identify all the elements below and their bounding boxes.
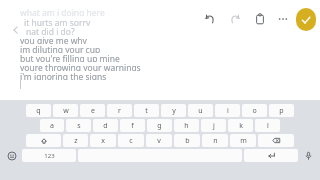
staticText: q <box>36 106 41 116</box>
button[interactable]: c <box>118 134 144 147</box>
button[interactable]: d <box>93 119 118 132</box>
staticText: p <box>279 106 284 116</box>
staticText: but you're filling up mine <box>20 53 120 62</box>
staticText: it hurts am sorry <box>24 17 91 26</box>
staticText: s <box>77 121 81 131</box>
button[interactable]: w <box>53 104 78 117</box>
staticText: 123 <box>44 152 55 160</box>
button[interactable]: Share <box>250 9 270 29</box>
button[interactable]: h <box>174 119 199 132</box>
button[interactable]: u <box>188 104 213 117</box>
staticText: x <box>101 136 105 146</box>
staticText: youre throwing your warnings <box>20 62 141 71</box>
staticText: w <box>63 106 69 116</box>
staticText: t <box>145 106 148 116</box>
button[interactable]: Redo <box>225 9 245 29</box>
button[interactable]: a <box>40 119 64 132</box>
button[interactable]: v <box>146 134 172 147</box>
button[interactable]: Voice input <box>300 149 316 162</box>
staticText: e <box>91 106 95 116</box>
staticText: l <box>267 121 269 131</box>
button[interactable]: Undo <box>200 9 220 29</box>
staticText: g <box>157 121 162 131</box>
staticText: v <box>157 136 161 146</box>
button[interactable]: y <box>161 104 186 117</box>
staticText: z <box>74 136 78 146</box>
button[interactable]: Emoji <box>4 149 20 162</box>
staticText: m <box>240 136 247 146</box>
button[interactable]: Shift <box>26 134 61 147</box>
button[interactable]: x <box>90 134 116 147</box>
button[interactable]: b <box>174 134 200 147</box>
button[interactable]: Enter <box>244 149 298 162</box>
button[interactable]: r <box>107 104 132 117</box>
button[interactable]: g <box>147 119 172 132</box>
button[interactable]: Numbers <box>22 149 76 162</box>
staticText: i <box>227 106 229 116</box>
button[interactable]: k <box>228 119 253 132</box>
staticText: o <box>252 106 257 116</box>
button[interactable]: n <box>202 134 228 147</box>
button[interactable]: o <box>242 104 267 117</box>
staticText: j <box>213 121 215 131</box>
button[interactable]: Backspace <box>258 134 294 147</box>
staticText: n <box>213 136 218 146</box>
staticText: a <box>50 121 54 131</box>
staticText: what am i doing here <box>20 7 105 16</box>
button[interactable]: Done <box>296 8 316 31</box>
staticText: nat did i do? <box>26 26 75 35</box>
staticText: r <box>118 106 121 116</box>
button[interactable]: e <box>80 104 105 117</box>
staticText: y <box>172 106 176 116</box>
staticText: you give me why <box>20 35 87 44</box>
button[interactable]: Back <box>9 23 23 37</box>
button[interactable]: p <box>269 104 294 117</box>
staticText: b <box>185 136 190 146</box>
button[interactable]: t <box>134 104 159 117</box>
button[interactable]: l <box>255 119 280 132</box>
staticText: i'm ignoring the signs <box>20 71 107 80</box>
staticText: c <box>129 136 133 146</box>
staticText: d <box>103 121 108 131</box>
button[interactable]: s <box>66 119 91 132</box>
staticText: f <box>131 121 134 131</box>
button[interactable]: q <box>26 104 51 117</box>
button[interactable]: z <box>63 134 88 147</box>
button[interactable]: m <box>230 134 256 147</box>
staticText: u <box>198 106 203 116</box>
button[interactable]: j <box>201 119 226 132</box>
button[interactable]: More options <box>273 9 293 29</box>
button[interactable]: f <box>120 119 145 132</box>
button[interactable]: i <box>215 104 240 117</box>
staticText: im diluting your cup <box>20 44 101 53</box>
staticText: k <box>239 121 243 131</box>
staticText: h <box>184 121 189 131</box>
